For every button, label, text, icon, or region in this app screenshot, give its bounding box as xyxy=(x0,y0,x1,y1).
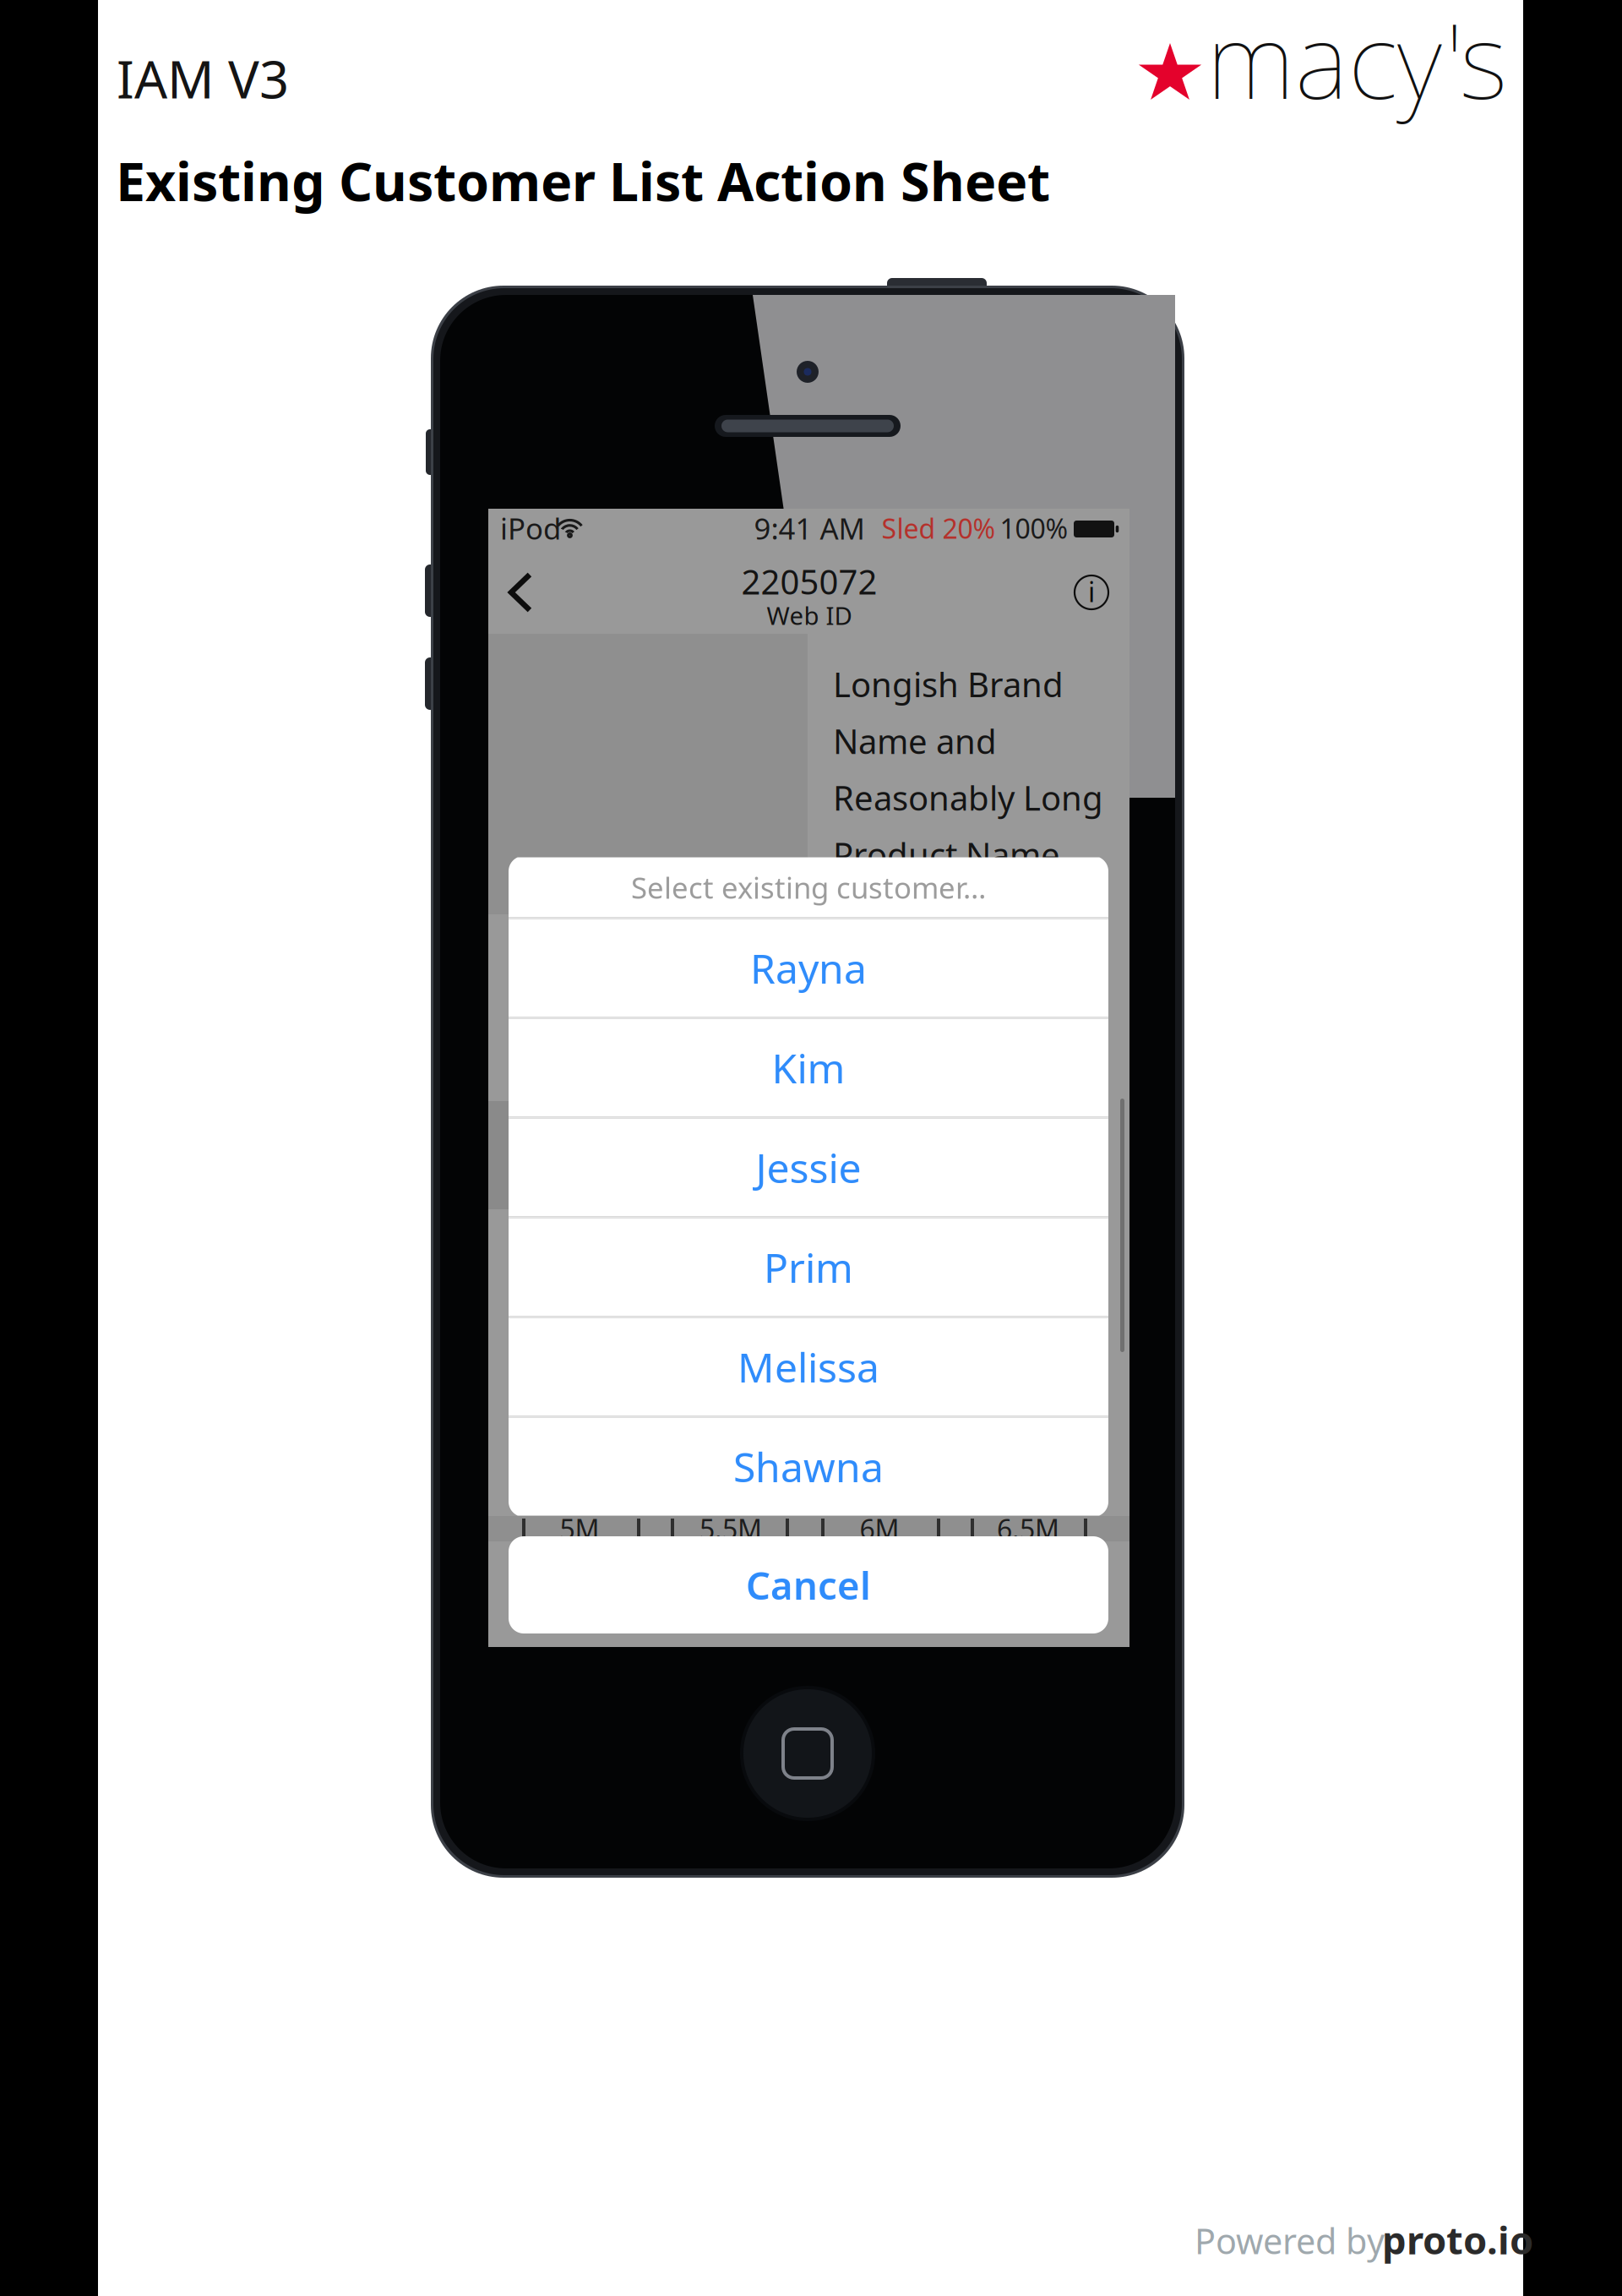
button[interactable]: Jessie xyxy=(509,1118,1108,1216)
button[interactable]: Info xyxy=(1059,561,1124,624)
staticText: Shawna xyxy=(733,1440,884,1493)
staticText: Rayna xyxy=(750,941,867,995)
button[interactable]: Back xyxy=(488,561,552,624)
staticText: i xyxy=(1088,574,1095,610)
staticText: Powered by xyxy=(1195,2217,1385,2264)
staticText: Product Name xyxy=(833,832,1060,877)
button[interactable]: Cancel xyxy=(509,1536,1108,1633)
button[interactable]: Shawna xyxy=(509,1418,1108,1516)
staticText: iPod xyxy=(500,509,561,548)
staticText: Select existing customer… xyxy=(631,868,986,907)
staticText: Longish Brand xyxy=(833,662,1064,707)
staticText: Prim xyxy=(764,1240,853,1294)
button[interactable]: Prim xyxy=(509,1218,1108,1316)
staticText: 100% xyxy=(1000,510,1068,546)
staticText: 6.5M xyxy=(997,1511,1059,1547)
staticText: 5M xyxy=(560,1511,599,1547)
staticText: Reasonably Long xyxy=(833,775,1103,820)
button[interactable]: Melissa xyxy=(509,1318,1108,1416)
staticText: Jessie xyxy=(756,1140,861,1194)
button[interactable]: Rayna xyxy=(509,919,1108,1017)
staticText: macy's xyxy=(1206,0,1507,128)
staticText: 6M xyxy=(860,1511,899,1547)
staticText: 5.5M xyxy=(699,1511,762,1547)
staticText: 9:41 AM xyxy=(754,509,865,548)
staticText: Kim xyxy=(772,1041,845,1095)
button[interactable]: Kim xyxy=(509,1019,1108,1117)
staticText: Existing Customer List Action Sheet xyxy=(116,145,1050,216)
staticText: Web ID xyxy=(767,599,852,632)
staticText: Melissa xyxy=(738,1340,879,1394)
staticText: proto.io xyxy=(1382,2214,1533,2265)
staticText: Sled 20% xyxy=(882,510,996,546)
staticText: 2205072 xyxy=(741,559,877,604)
staticText: Name and xyxy=(833,718,997,763)
staticText: Cancel xyxy=(746,1559,871,1610)
staticText: IAM V3 xyxy=(117,44,289,113)
